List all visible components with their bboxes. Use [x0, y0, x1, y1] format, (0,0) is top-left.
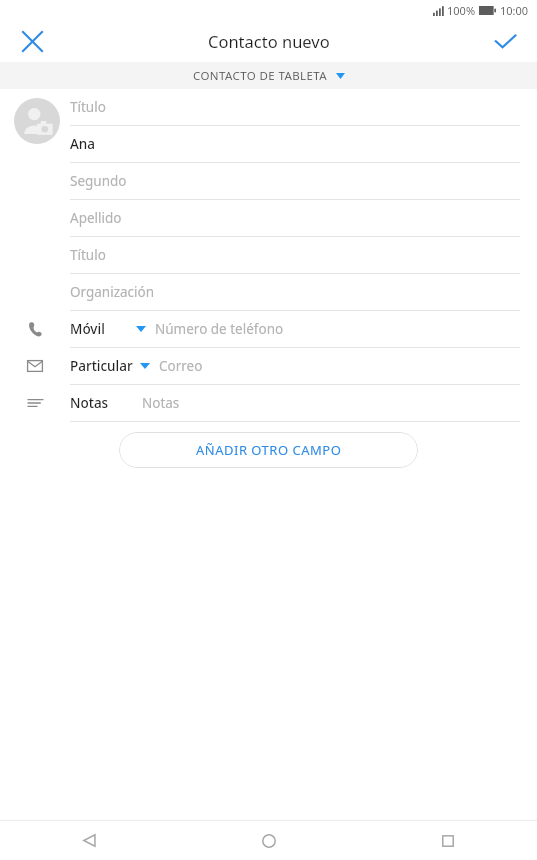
staticText: Contacto nuevo [208, 30, 330, 52]
staticText: AÑADIR OTRO CAMPO [196, 441, 342, 459]
button[interactable]: Correo [0, 348, 537, 385]
button[interactable]: CONTACTO DE TABLETA [0, 62, 537, 89]
staticText: Segundo [70, 172, 127, 190]
button[interactable]: Aplicaciones recientes [358, 821, 537, 860]
button[interactable]: Apellido [0, 200, 537, 237]
staticText: 100% [447, 3, 476, 18]
button[interactable]: Título [0, 89, 537, 126]
staticText: Móvil [70, 320, 105, 338]
button[interactable]: AÑADIR OTRO CAMPO [119, 432, 418, 468]
button[interactable]: Inicio [179, 821, 358, 860]
button[interactable]: Cerrar [10, 20, 54, 62]
button[interactable]: Segundo [0, 163, 537, 200]
staticText: CONTACTO DE TABLETA [193, 68, 328, 84]
button[interactable]: Título [0, 237, 537, 274]
staticText: Notas [142, 394, 180, 412]
button[interactable]: Ana [0, 126, 537, 163]
staticText: Número de teléfono [155, 320, 284, 338]
staticText: Organización [70, 283, 155, 301]
staticText: Ana [70, 135, 96, 153]
button[interactable]: Atrás [0, 821, 179, 860]
button[interactable]: Guardar [483, 20, 527, 62]
staticText: Título [70, 98, 106, 116]
button[interactable]: Teléfono [0, 311, 537, 348]
staticText: Notas [70, 394, 109, 412]
button[interactable]: Organización [0, 274, 537, 311]
button[interactable]: Añadir foto de contacto [14, 98, 60, 144]
staticText: Particular [70, 357, 133, 375]
staticText: Título [70, 246, 106, 264]
staticText: Correo [159, 357, 203, 375]
button[interactable]: Notas [0, 385, 537, 422]
staticText: Apellido [70, 209, 122, 227]
staticText: 10:00 [500, 3, 529, 18]
